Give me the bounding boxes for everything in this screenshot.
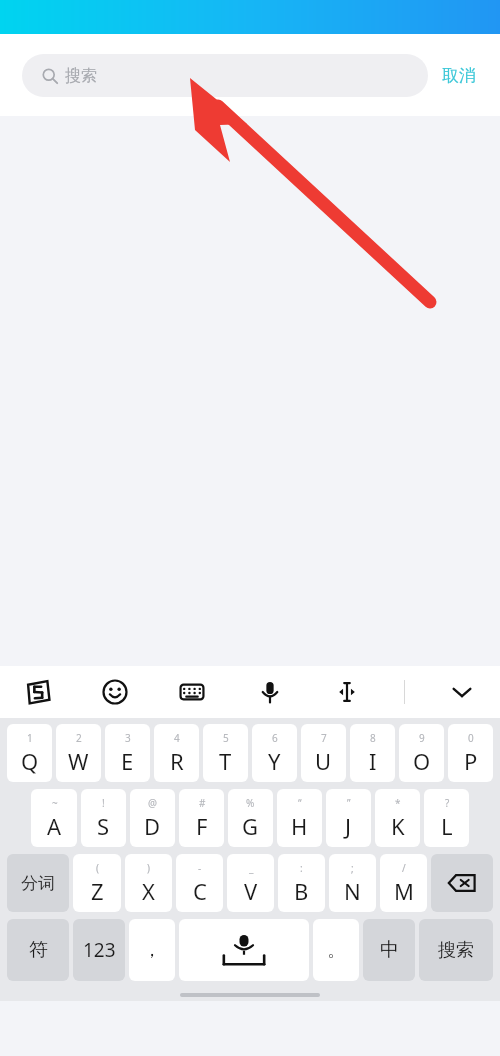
staticText: # — [199, 796, 206, 810]
button[interactable]: Keyboard layout — [172, 672, 212, 712]
staticText: 7 — [321, 731, 327, 745]
staticText: - — [198, 861, 202, 875]
button[interactable]: 。 — [313, 919, 359, 981]
staticText: B — [294, 876, 309, 906]
button[interactable]: 8 — [350, 724, 395, 782]
staticText: A — [47, 811, 62, 841]
staticText: P — [464, 746, 478, 776]
staticText: “ — [298, 796, 302, 810]
button[interactable]: 符 — [7, 919, 69, 981]
button[interactable]: / — [380, 854, 427, 912]
staticText: R — [170, 746, 184, 776]
staticText: % — [246, 796, 255, 810]
button[interactable]: @ — [130, 789, 175, 847]
button[interactable]: Sogou input — [18, 672, 58, 712]
staticText: N — [344, 876, 361, 906]
button[interactable]: % — [228, 789, 273, 847]
staticText: 4 — [174, 731, 180, 745]
staticText: K — [391, 811, 405, 841]
staticText: 2 — [76, 731, 82, 745]
button[interactable]: 9 — [399, 724, 444, 782]
staticText: 符 — [29, 938, 48, 962]
button[interactable]: _ — [227, 854, 274, 912]
staticText: E — [121, 746, 134, 776]
staticText: 3 — [125, 731, 131, 745]
button[interactable]: ) — [125, 854, 172, 912]
staticText: F — [196, 811, 208, 841]
staticText: ) — [147, 861, 150, 875]
staticText: 6 — [272, 731, 278, 745]
staticText: 8 — [370, 731, 376, 745]
staticText: 分词 — [21, 873, 55, 894]
button[interactable]: 5 — [203, 724, 248, 782]
button[interactable]: Move cursor — [327, 672, 367, 712]
staticText: 取消 — [442, 65, 476, 86]
button[interactable]: Space, voice input — [179, 919, 309, 981]
button[interactable]: 6 — [252, 724, 297, 782]
button[interactable]: 7 — [301, 724, 346, 782]
button[interactable]: * — [375, 789, 420, 847]
button[interactable]: ， — [129, 919, 175, 981]
button[interactable]: 搜索 — [419, 919, 493, 981]
staticText: Q — [21, 746, 39, 776]
staticText: 9 — [419, 731, 425, 745]
staticText: L — [441, 811, 453, 841]
staticText: : — [300, 861, 303, 875]
staticText: O — [413, 746, 431, 776]
staticText: * — [395, 796, 401, 810]
button[interactable]: 搜索 — [22, 54, 428, 97]
staticText: / — [402, 861, 406, 875]
staticText: D — [144, 811, 161, 841]
button[interactable]: Backspace — [431, 854, 493, 912]
staticText: C — [193, 876, 207, 906]
staticText: ~ — [52, 796, 58, 810]
button[interactable]: ~ — [31, 789, 77, 847]
staticText: I — [369, 746, 377, 776]
staticText: ? — [445, 796, 450, 810]
button[interactable]: ( — [73, 854, 121, 912]
staticText: 0 — [468, 731, 474, 745]
button[interactable]: 2 — [56, 724, 101, 782]
staticText: 搜索 — [438, 939, 474, 962]
button[interactable]: 123 — [73, 919, 125, 981]
button[interactable]: 1 — [7, 724, 52, 782]
staticText: J — [345, 811, 352, 841]
staticText: ” — [347, 796, 351, 810]
button[interactable]: - — [176, 854, 223, 912]
button[interactable]: “ — [277, 789, 322, 847]
button[interactable]: # — [179, 789, 224, 847]
staticText: 搜索 — [65, 66, 97, 86]
staticText: ! — [102, 796, 105, 810]
staticText: V — [244, 876, 258, 906]
button[interactable]: Voice input — [250, 672, 290, 712]
staticText: Y — [268, 746, 281, 776]
button[interactable]: ; — [329, 854, 376, 912]
button[interactable]: 4 — [154, 724, 199, 782]
staticText: 1 — [27, 731, 33, 745]
button[interactable]: ” — [326, 789, 371, 847]
staticText: _ — [249, 861, 254, 875]
button[interactable]: Hide keyboard — [442, 672, 482, 712]
staticText: W — [68, 746, 89, 776]
button[interactable]: 0 — [448, 724, 493, 782]
button[interactable]: 取消 — [428, 65, 478, 86]
staticText: G — [242, 811, 259, 841]
button[interactable]: ? — [424, 789, 469, 847]
button[interactable]: 中 — [363, 919, 415, 981]
staticText: ; — [351, 861, 354, 875]
staticText: U — [315, 746, 332, 776]
button[interactable]: 分词 — [7, 854, 69, 912]
staticText: 5 — [223, 731, 229, 745]
staticText: ， — [143, 939, 161, 962]
button[interactable]: ! — [81, 789, 126, 847]
staticText: S — [97, 811, 110, 841]
staticText: ( — [96, 861, 99, 875]
staticText: @ — [148, 796, 157, 810]
staticText: 中 — [380, 938, 399, 962]
staticText: T — [219, 746, 232, 776]
button[interactable]: : — [278, 854, 325, 912]
staticText: 。 — [327, 939, 345, 962]
staticText: Z — [91, 876, 104, 906]
button[interactable]: 3 — [105, 724, 150, 782]
button[interactable]: Emoji — [95, 672, 135, 712]
